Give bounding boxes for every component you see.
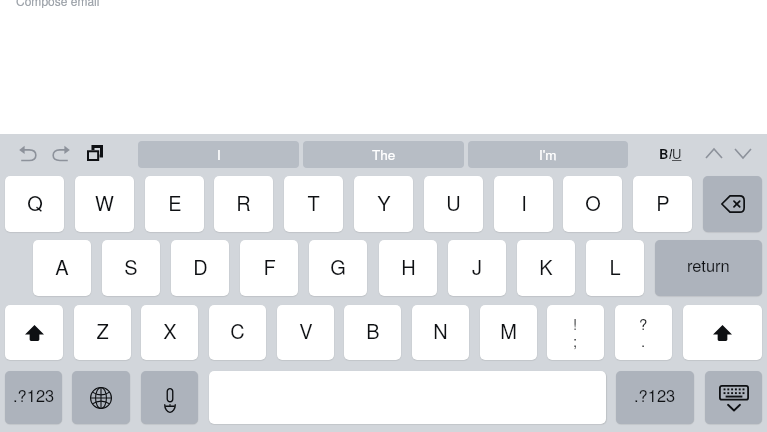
button[interactable]: Z [74,305,131,360]
staticText: T [307,188,320,217]
staticText: D [193,252,208,281]
staticText: E [168,188,182,217]
button[interactable]: Shift [5,305,63,360]
button[interactable]: W [75,176,134,232]
button[interactable]: J [448,240,506,296]
button[interactable]: Shift [683,305,762,360]
button[interactable]: S [102,240,160,296]
button[interactable]: V [277,305,334,360]
button[interactable]: return [655,240,762,296]
button[interactable]: F [240,240,298,296]
button[interactable]: Paste [81,139,109,167]
staticText: S [124,252,138,281]
staticText: ; [573,330,578,351]
staticText: P [656,188,670,217]
staticText: Z [96,316,109,345]
staticText: K [539,252,553,281]
staticText: Q [27,188,43,217]
button[interactable]: Text formatting [656,141,684,165]
button[interactable]: .?123 [5,371,62,424]
button[interactable]: The [303,141,464,168]
staticText: ! [573,313,578,334]
staticText: Y [377,188,391,217]
staticText: .?123 [634,383,676,407]
staticText: L [609,252,621,281]
button[interactable]: ? [615,305,672,360]
staticText: H [401,252,416,281]
staticText: . [641,330,646,351]
staticText: C [230,316,245,345]
staticText: U [446,188,461,217]
button[interactable]: Y [354,176,413,232]
button[interactable]: Hide keyboard [705,371,762,424]
button[interactable]: H [379,240,437,296]
staticText: G [330,252,346,281]
staticText: I'm [539,145,557,164]
button[interactable]: I [494,176,553,232]
staticText: B [366,316,380,345]
button[interactable]: C [209,305,266,360]
staticText: Compose email [16,0,100,9]
button[interactable]: .?123 [616,371,694,424]
button[interactable]: X [141,305,198,360]
staticText: R [236,188,251,217]
button[interactable]: N [412,305,469,360]
button[interactable]: U [424,176,483,232]
button[interactable]: L [586,240,644,296]
button[interactable]: P [633,176,692,232]
staticText: .?123 [13,383,55,407]
button[interactable]: D [171,240,229,296]
staticText: I [217,145,221,164]
button[interactable]: O [563,176,622,232]
button[interactable]: Switch language [72,371,130,424]
button[interactable]: T [284,176,343,232]
staticText: N [433,316,448,345]
button[interactable]: Previous field [702,140,726,166]
button[interactable]: Q [5,176,64,232]
staticText: J [472,252,482,281]
button[interactable]: Undo [14,140,40,166]
button[interactable]: Backspace [703,176,762,232]
staticText: O [585,188,601,217]
staticText: The [372,145,396,164]
button[interactable]: Redo [48,140,74,166]
staticText: F [263,252,276,281]
staticText: I [521,188,527,217]
button[interactable]: Next field [731,140,755,166]
staticText: V [299,316,313,345]
button[interactable]: G [309,240,367,296]
staticText: X [163,316,177,345]
button[interactable]: M [480,305,537,360]
button[interactable]: E [145,176,204,232]
staticText: M [500,316,517,345]
staticText: W [95,188,114,217]
staticText: A [55,252,69,281]
staticText: return [687,253,730,277]
button[interactable]: R [214,176,273,232]
button[interactable]: B [344,305,401,360]
button[interactable]: K [517,240,575,296]
button[interactable]: Voice input [141,371,198,424]
button[interactable]: I'm [468,141,628,168]
staticText: ? [639,313,648,334]
button[interactable]: A [33,240,91,296]
button[interactable]: I [138,141,299,168]
button[interactable]: ! [547,305,604,360]
staticText: BIU [659,144,682,163]
